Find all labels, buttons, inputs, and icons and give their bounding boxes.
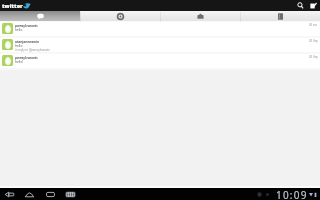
button[interactable]: pwnsylvanwin xyxy=(0,22,320,38)
button[interactable]: Recent apps xyxy=(42,188,59,200)
staticText: in reply to @pwnsylvanwin xyxy=(15,48,50,52)
staticText: hello xyxy=(15,44,23,48)
staticText: twitter xyxy=(2,2,23,10)
button[interactable]: Lists xyxy=(240,11,320,22)
staticText: hello xyxy=(15,28,23,32)
staticText: atanjanewswin xyxy=(15,40,40,44)
button[interactable]: Search xyxy=(294,0,307,11)
staticText: hello! xyxy=(15,60,24,64)
button[interactable]: Back xyxy=(1,188,18,200)
staticText: pwnsylvanwin xyxy=(15,56,38,60)
staticText: pwnsylvanwin xyxy=(15,24,38,28)
button[interactable]: Keyboard xyxy=(62,188,79,200)
button[interactable]: Home xyxy=(21,188,38,200)
button[interactable]: Messages xyxy=(160,11,240,22)
button[interactable]: atanjanewswin xyxy=(0,38,320,54)
staticText: 20 Sep xyxy=(309,55,318,59)
button[interactable]: Mentions xyxy=(80,11,160,22)
button[interactable]: Compose tweet xyxy=(307,0,320,11)
button[interactable]: Timeline xyxy=(0,11,80,22)
staticText: 10:09 xyxy=(276,188,308,200)
staticText: 45 sec xyxy=(309,23,318,27)
staticText: 20 Sep xyxy=(309,39,318,43)
button[interactable]: pwnsylvanwin xyxy=(0,54,320,70)
